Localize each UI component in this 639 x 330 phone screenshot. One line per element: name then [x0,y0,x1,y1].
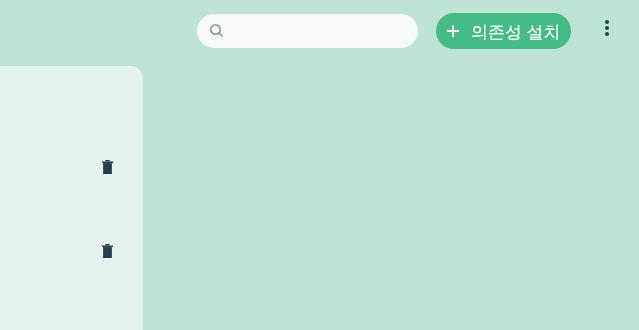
staticText: 의존성 설치 [471,20,561,43]
button[interactable]: 의존성 설치 [436,13,571,49]
button[interactable]: Delete [97,241,117,261]
button[interactable] [197,14,418,48]
button[interactable]: More options [593,14,621,42]
button[interactable]: Delete [97,157,117,177]
